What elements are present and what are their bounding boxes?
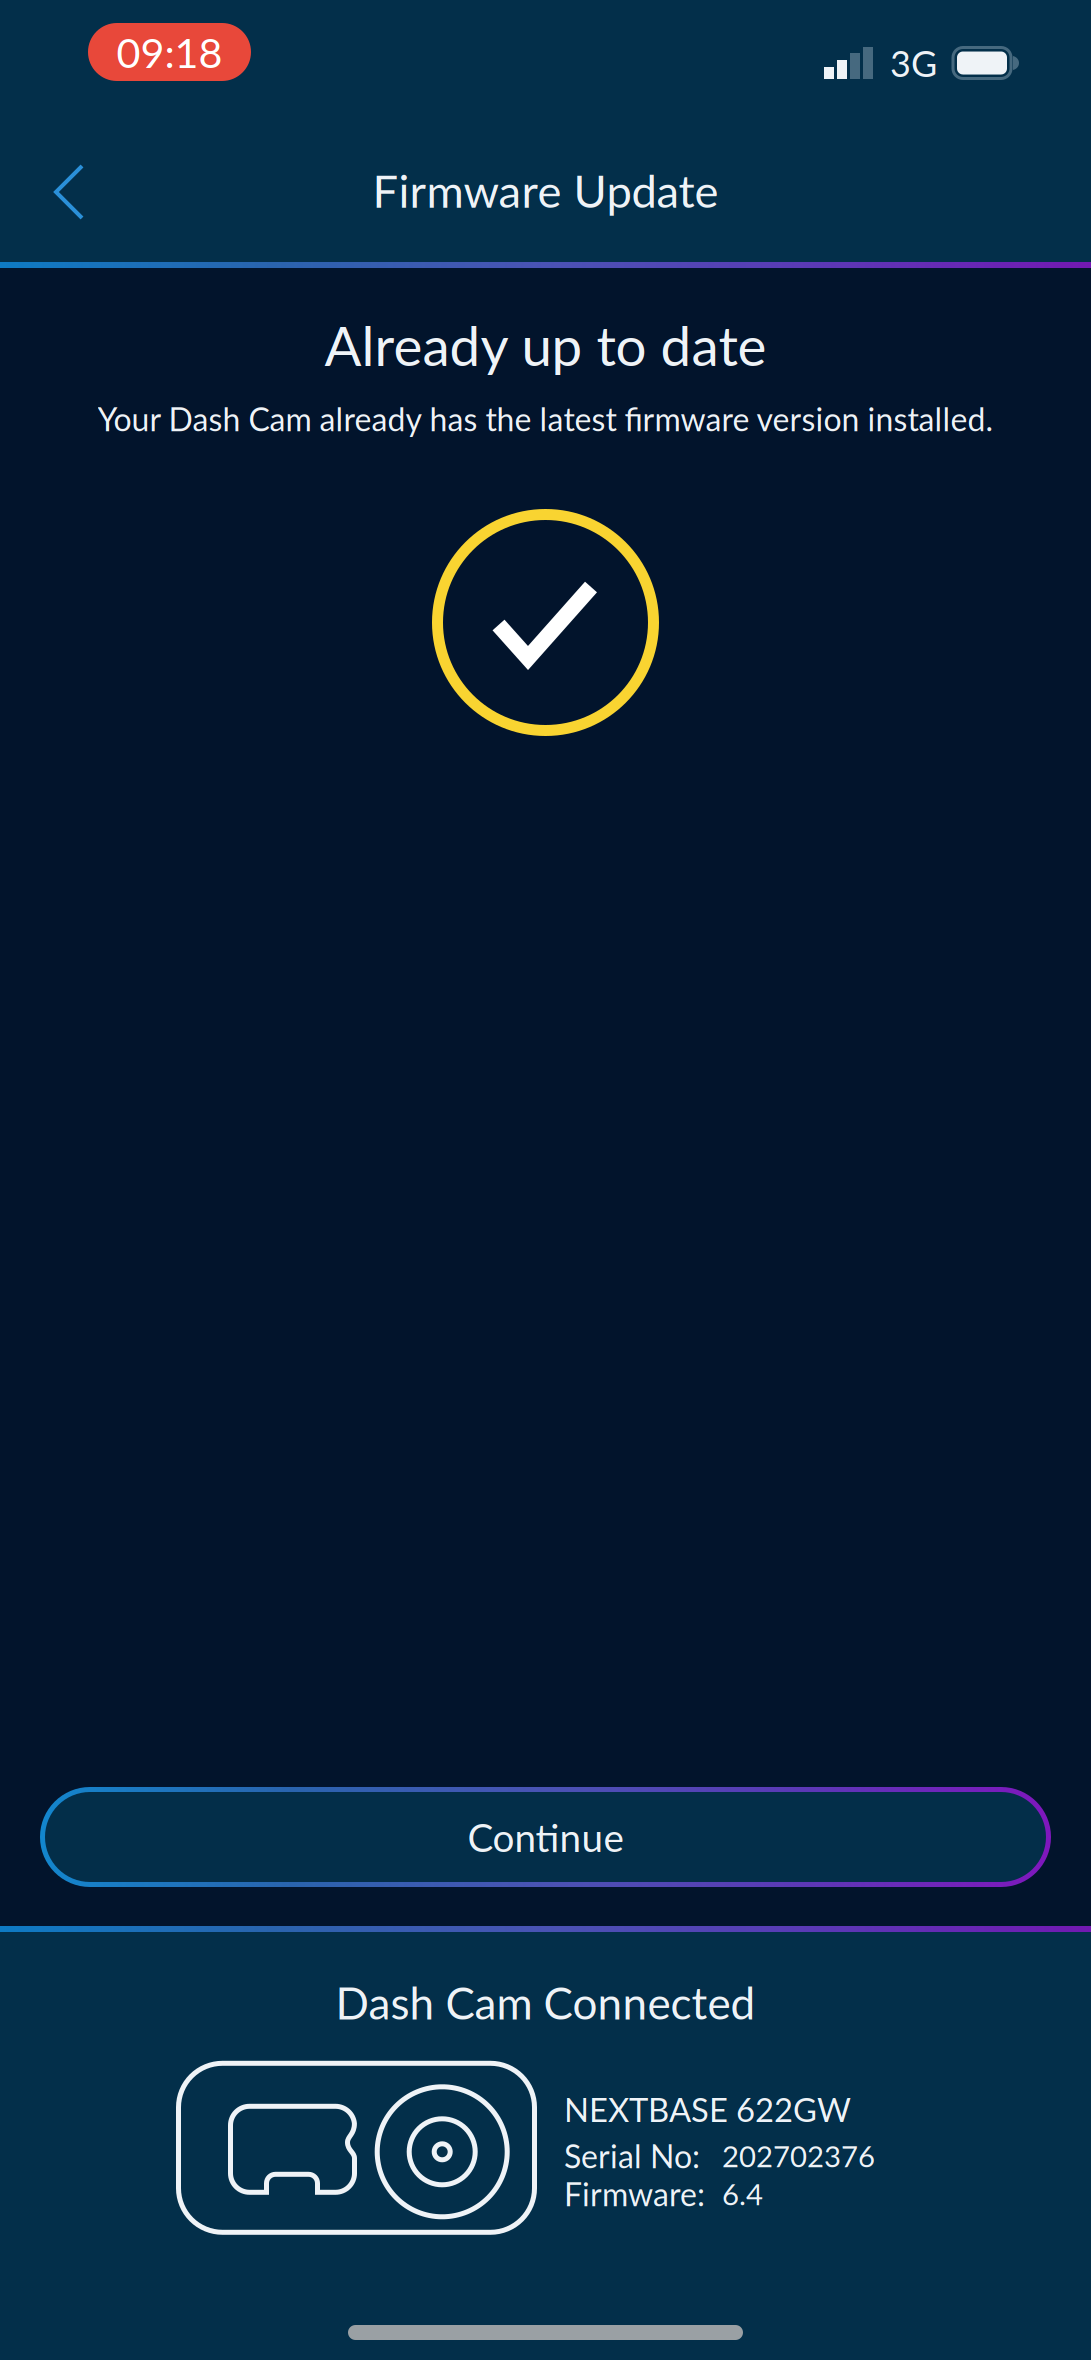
- staticText: 3G: [890, 41, 937, 85]
- staticText: NEXTBASE 622GW: [564, 2090, 851, 2129]
- staticText: Dash Cam Connected: [335, 1976, 755, 2029]
- staticText: 202702376: [722, 2138, 875, 2173]
- staticText: Firmware:: [564, 2175, 705, 2213]
- staticText: 6.4: [722, 2176, 763, 2211]
- button[interactable]: Back: [0, 129, 120, 245]
- staticText: Serial No:: [564, 2137, 700, 2175]
- staticText: Already up to date: [324, 312, 766, 378]
- staticText: Continue: [467, 1814, 623, 1860]
- staticText: Your Dash Cam already has the latest fir…: [97, 400, 993, 438]
- staticText: 09:18: [116, 27, 222, 77]
- staticText: Firmware Update: [372, 163, 718, 217]
- button[interactable]: Continue: [0, 1787, 1091, 1926]
